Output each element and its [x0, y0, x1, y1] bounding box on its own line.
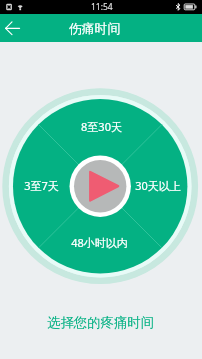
staticText: 3至7天	[24, 178, 59, 193]
button[interactable]: 48小时以内	[54, 227, 144, 257]
staticText: 30天以上	[135, 178, 181, 193]
button[interactable]: 3至7天	[12, 156, 70, 214]
staticText: 48小时以内	[71, 235, 128, 250]
staticText: 伤痛时间	[69, 21, 121, 37]
button[interactable]: 8至30天	[56, 111, 146, 141]
button[interactable]: 30天以上	[129, 156, 187, 214]
staticText: 11:54	[91, 1, 113, 13]
button[interactable]: Back	[0, 15, 26, 41]
staticText: 8至30天	[81, 119, 122, 134]
staticText: 选择您的疼痛时间	[47, 314, 155, 331]
button[interactable]: Play	[70, 156, 131, 217]
